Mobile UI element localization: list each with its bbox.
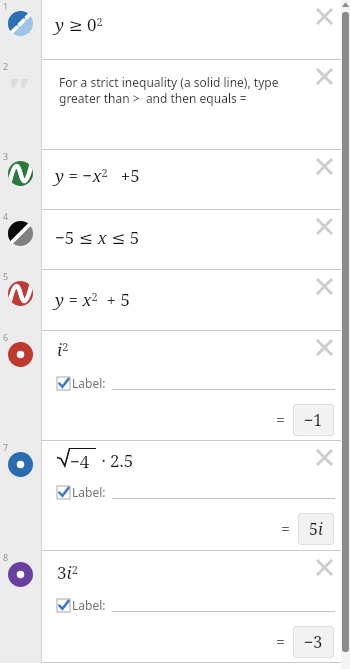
button[interactable]: Delete expression xyxy=(311,63,337,89)
button[interactable]: 5i xyxy=(309,518,323,540)
button[interactable]: 8 xyxy=(0,551,341,663)
button[interactable]: 5 xyxy=(0,270,341,331)
button[interactable]: Delete expression xyxy=(311,153,337,179)
button[interactable]: Label: xyxy=(57,484,106,500)
button[interactable]: 1 xyxy=(0,0,341,60)
staticText: Label: xyxy=(72,597,106,613)
button[interactable]: 3 xyxy=(0,150,341,210)
staticText: 3 xyxy=(3,150,9,162)
staticText: = xyxy=(276,631,285,653)
button[interactable]: −3 xyxy=(304,631,323,653)
button[interactable] xyxy=(112,485,335,499)
staticText: 6 xyxy=(3,331,9,343)
staticText: 2 xyxy=(3,60,9,72)
button[interactable]: Delete expression xyxy=(311,554,337,580)
staticText: −1 xyxy=(304,409,323,431)
staticText: = xyxy=(276,409,285,431)
staticText: 3i2 xyxy=(57,561,78,584)
staticText: Label: xyxy=(72,375,106,391)
staticText: y ≥ 02 xyxy=(55,13,103,36)
staticText: · 2.5 xyxy=(97,449,134,472)
staticText: For a strict inequality (a solid line), … xyxy=(59,74,322,106)
staticText: 7 xyxy=(3,441,9,453)
staticText: y = −x2 +5 xyxy=(55,164,140,187)
staticText: 4 xyxy=(3,210,9,222)
button[interactable]: Delete expression xyxy=(311,213,337,239)
staticText: y = x2 + 5 xyxy=(55,288,131,311)
button[interactable]: Label: xyxy=(57,375,106,391)
button[interactable]: −1 xyxy=(304,409,323,431)
staticText: 5 xyxy=(3,270,9,282)
staticText: 5i xyxy=(309,518,323,540)
button[interactable]: Delete expression xyxy=(311,444,337,470)
button[interactable]: Scrollbar xyxy=(342,12,349,652)
button[interactable]: 4 xyxy=(0,210,341,270)
button[interactable]: 6 xyxy=(0,331,341,441)
staticText: = xyxy=(281,518,290,540)
button[interactable]: 7 xyxy=(0,441,341,551)
button[interactable]: Delete expression xyxy=(311,3,337,29)
button[interactable]: 2 xyxy=(0,60,341,150)
staticText: −3 xyxy=(304,631,323,653)
button[interactable]: Delete expression xyxy=(311,334,337,360)
button[interactable]: Delete expression xyxy=(311,273,337,299)
staticText: 1 xyxy=(3,0,9,12)
staticText: i2 xyxy=(57,338,69,361)
staticText: 8 xyxy=(3,551,9,563)
staticText: −5 ≤ x ≤ 5 xyxy=(55,226,140,249)
button[interactable] xyxy=(112,376,335,390)
button[interactable] xyxy=(112,598,335,612)
staticText: Label: xyxy=(72,484,106,500)
button[interactable]: Label: xyxy=(57,597,106,613)
staticText: −4 xyxy=(70,450,90,473)
